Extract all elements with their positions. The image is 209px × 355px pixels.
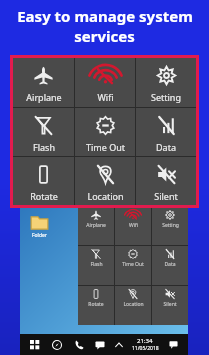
button[interactable]: Flash [13, 108, 74, 156]
staticText: Silent [163, 301, 177, 308]
button[interactable]: Data [152, 246, 188, 285]
button[interactable]: Time Out [75, 108, 135, 156]
staticText: Easy to manage system [17, 6, 193, 26]
staticText: Location [123, 301, 144, 308]
button[interactable]: Browser [46, 334, 68, 355]
button[interactable]: Setting [136, 58, 196, 107]
staticText: Airplane [86, 222, 106, 229]
button[interactable]: Silent [152, 286, 188, 325]
staticText: Location [87, 190, 124, 202]
button[interactable]: Wifi [115, 207, 151, 245]
staticText: Flash [33, 141, 55, 153]
staticText: Wifi [97, 91, 114, 103]
staticText: 21:34 [137, 337, 153, 345]
staticText: Airplane [26, 91, 62, 103]
staticText: Folder [32, 232, 47, 239]
button[interactable]: Airplane [13, 58, 74, 107]
staticText: Rotate [30, 190, 58, 202]
button[interactable]: Messages [89, 334, 110, 355]
button[interactable]: Silent [136, 157, 196, 205]
button[interactable]: Show hidden icons [110, 334, 127, 355]
button[interactable]: Notifications [163, 334, 184, 355]
button[interactable]: Flash [78, 246, 114, 285]
button[interactable]: Rotate [13, 157, 74, 205]
staticText: 11/05/2018 [132, 345, 159, 352]
button[interactable]: Wifi [75, 58, 135, 107]
staticText: Silent [154, 190, 178, 202]
button[interactable]: Rotate [78, 286, 114, 325]
button[interactable]: Time Out [115, 246, 151, 285]
staticText: services [74, 26, 135, 46]
button[interactable]: Airplane [78, 207, 114, 245]
button[interactable]: Start [24, 334, 46, 355]
staticText: Setting [151, 91, 181, 103]
staticText: Time Out [122, 261, 144, 268]
button[interactable]: Data [136, 108, 196, 156]
button[interactable]: Phone [68, 334, 89, 355]
staticText: Wifi [129, 222, 138, 229]
staticText: Flash [90, 261, 103, 268]
staticText: Data [156, 141, 176, 153]
button[interactable]: Location [75, 157, 135, 205]
staticText: Time Out [86, 141, 125, 153]
staticText: Data [164, 261, 176, 268]
button[interactable]: Setting [152, 207, 188, 245]
staticText: Rotate [88, 301, 104, 308]
staticText: Setting [162, 222, 179, 229]
button[interactable]: 21:34 [127, 337, 163, 352]
button[interactable]: Location [115, 286, 151, 325]
